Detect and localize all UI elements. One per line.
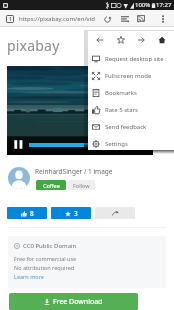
staticText: 3 bbox=[74, 209, 78, 218]
button[interactable]: Rate 5 stars bbox=[88, 101, 174, 118]
staticText: Rate 5 stars bbox=[105, 106, 138, 114]
button[interactable]: Fullscreen mode bbox=[88, 67, 174, 84]
staticText: 1 bbox=[9, 16, 12, 23]
staticText: Settings bbox=[105, 140, 128, 148]
staticText: 100% bbox=[135, 1, 151, 9]
button[interactable]: Bookmarks bbox=[88, 84, 174, 101]
staticText: Request desktop site bbox=[105, 55, 164, 63]
staticText: Send feedback bbox=[105, 123, 147, 131]
button[interactable]: Settings bbox=[88, 135, 174, 152]
button[interactable]: 3 bbox=[51, 207, 91, 219]
staticText: ReinhardSinger / 1 image bbox=[35, 167, 113, 176]
staticText: Bookmarks bbox=[105, 89, 137, 97]
staticText: 17:27 bbox=[156, 1, 172, 9]
staticText: https://pixabay.com/en/vid bbox=[19, 15, 95, 23]
staticText: pixabay bbox=[7, 36, 60, 55]
button[interactable]: 8 bbox=[7, 207, 47, 219]
staticText: 8 bbox=[30, 209, 34, 218]
staticText: No attribution required bbox=[14, 264, 75, 271]
button[interactable]: Pause bbox=[12, 138, 25, 151]
button[interactable]: Cast bbox=[135, 13, 147, 25]
button[interactable]: Send feedback bbox=[88, 118, 174, 135]
staticText: Fullscreen mode bbox=[105, 72, 152, 80]
button[interactable]: Free Download bbox=[9, 293, 138, 310]
staticText: Free for commercial use bbox=[14, 255, 77, 262]
staticText: Coffee bbox=[43, 182, 60, 189]
button[interactable]: Home bbox=[154, 32, 170, 48]
button[interactable]: Reload bbox=[101, 13, 113, 25]
staticText: CC0 Public Domain bbox=[23, 242, 77, 250]
button[interactable]: Coffee bbox=[36, 180, 66, 190]
button[interactable]: Request desktop site bbox=[88, 50, 174, 67]
staticText: Free Download bbox=[53, 297, 103, 307]
button[interactable]: Follow bbox=[68, 180, 95, 190]
button[interactable]: Reader mode bbox=[119, 13, 131, 25]
staticText: Follow bbox=[73, 182, 90, 189]
button[interactable]: Learn more bbox=[14, 273, 44, 280]
button[interactable]: More options bbox=[157, 13, 169, 25]
button[interactable]: Bookmark bbox=[113, 32, 129, 48]
button[interactable]: Share bbox=[95, 207, 135, 219]
button[interactable]: Back bbox=[92, 32, 108, 48]
button[interactable]: Forward bbox=[133, 32, 149, 48]
button[interactable]: Tabs bbox=[4, 13, 16, 25]
